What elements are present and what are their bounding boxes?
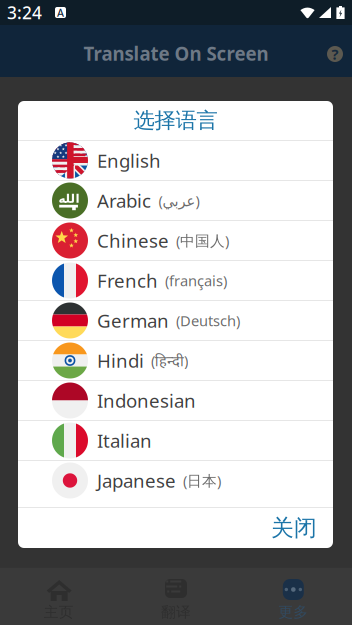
staticText: French [97,268,158,293]
staticText: (中国人) [176,231,229,250]
staticText: (日本) [183,471,221,490]
button[interactable]: French [18,261,333,300]
staticText: Italian [97,428,152,453]
staticText: 选择语言 [133,107,217,134]
button[interactable]: 关闭 [262,506,326,550]
staticText: Arabic [97,188,151,213]
staticText: (عربي) [158,191,199,210]
staticText: 关闭 [271,514,317,542]
staticText: 更多 [278,603,308,621]
staticText: Translate On Screen [83,41,268,66]
button[interactable]: الله [18,181,333,220]
staticText: English [97,148,161,173]
staticText: Japanese [97,468,176,493]
button[interactable]: Indonesian [18,381,333,420]
button[interactable]: Help [320,39,350,69]
staticText: (Deutsch) [176,311,240,330]
staticText: Hindi [97,348,144,373]
button[interactable]: English [18,141,333,180]
staticText: German [97,308,169,333]
staticText: 主页 [44,603,74,621]
button[interactable]: Hindi [18,341,333,380]
staticText: (हिन्दी) [151,351,188,370]
staticText: Chinese [97,228,169,253]
staticText: (français) [165,271,227,290]
staticText: ? [331,44,338,64]
button[interactable]: Chinese [18,221,333,260]
button[interactable]: Japanese [18,461,333,500]
staticText: 3:24 [7,1,42,24]
staticText: 翻译 [161,603,191,621]
button[interactable]: Italian [18,421,333,460]
button[interactable]: 更多 [235,568,352,625]
staticText: A [57,5,64,20]
staticText: الله [58,192,79,205]
button[interactable]: German [18,301,333,340]
staticText: Indonesian [97,388,196,413]
